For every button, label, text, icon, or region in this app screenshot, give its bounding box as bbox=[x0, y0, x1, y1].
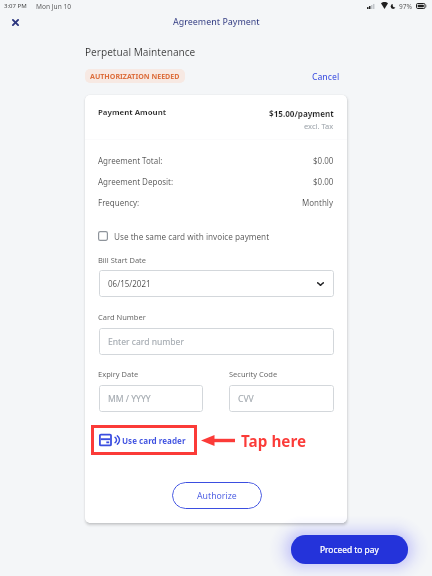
staticText: $0.00 bbox=[313, 176, 334, 187]
staticText: Agreement Total: bbox=[98, 155, 163, 166]
button[interactable]: Enter card number bbox=[99, 328, 334, 355]
staticText: 06/15/2021 bbox=[108, 278, 151, 289]
staticText: Agreement Deposit: bbox=[98, 176, 174, 187]
staticText: Proceed to pay bbox=[320, 544, 379, 555]
staticText: Tap here bbox=[241, 431, 307, 452]
staticText: Use the same card with invoice payment bbox=[114, 231, 270, 242]
button[interactable]: Proceed to pay bbox=[291, 535, 408, 564]
button[interactable]: MM / YYYY bbox=[99, 385, 203, 412]
button[interactable]: 06/15/2021 bbox=[99, 270, 334, 297]
staticText: $15.00/payment bbox=[269, 108, 334, 119]
staticText: Agreement Payment bbox=[173, 16, 260, 28]
staticText: $0.00 bbox=[313, 155, 334, 166]
staticText: excl. Tax bbox=[304, 121, 334, 131]
staticText: Use card reader bbox=[122, 435, 186, 446]
staticText: CVV bbox=[238, 393, 254, 405]
button[interactable]: Use card reader bbox=[91, 425, 197, 455]
staticText: Perpetual Maintenance bbox=[85, 45, 196, 59]
staticText: 97% bbox=[399, 2, 413, 11]
staticText: AUTHORIZATION NEEDED bbox=[90, 71, 180, 81]
button[interactable]: CVV bbox=[229, 385, 334, 412]
staticText: MM / YYYY bbox=[108, 393, 151, 405]
button[interactable]: Authorize bbox=[172, 482, 262, 509]
button[interactable]: AUTHORIZATION NEEDED bbox=[85, 69, 185, 83]
staticText: Security Code bbox=[229, 369, 278, 379]
button[interactable]: Close bbox=[5, 12, 25, 32]
staticText: Payment Amount bbox=[98, 107, 167, 118]
staticText: Authorize bbox=[197, 490, 237, 502]
staticText: Frequency: bbox=[98, 197, 140, 208]
staticText: Mon Jun 10 bbox=[36, 2, 71, 11]
staticText: Card Number bbox=[98, 312, 146, 322]
staticText: Enter card number bbox=[108, 336, 185, 348]
staticText: Cancel bbox=[312, 71, 340, 83]
staticText: Monthly bbox=[302, 197, 334, 208]
button[interactable]: Cancel bbox=[312, 71, 340, 83]
staticText: 3:07 PM bbox=[4, 2, 27, 10]
staticText: Expiry Date bbox=[98, 369, 139, 379]
staticText: Bill Start Date bbox=[98, 255, 147, 265]
